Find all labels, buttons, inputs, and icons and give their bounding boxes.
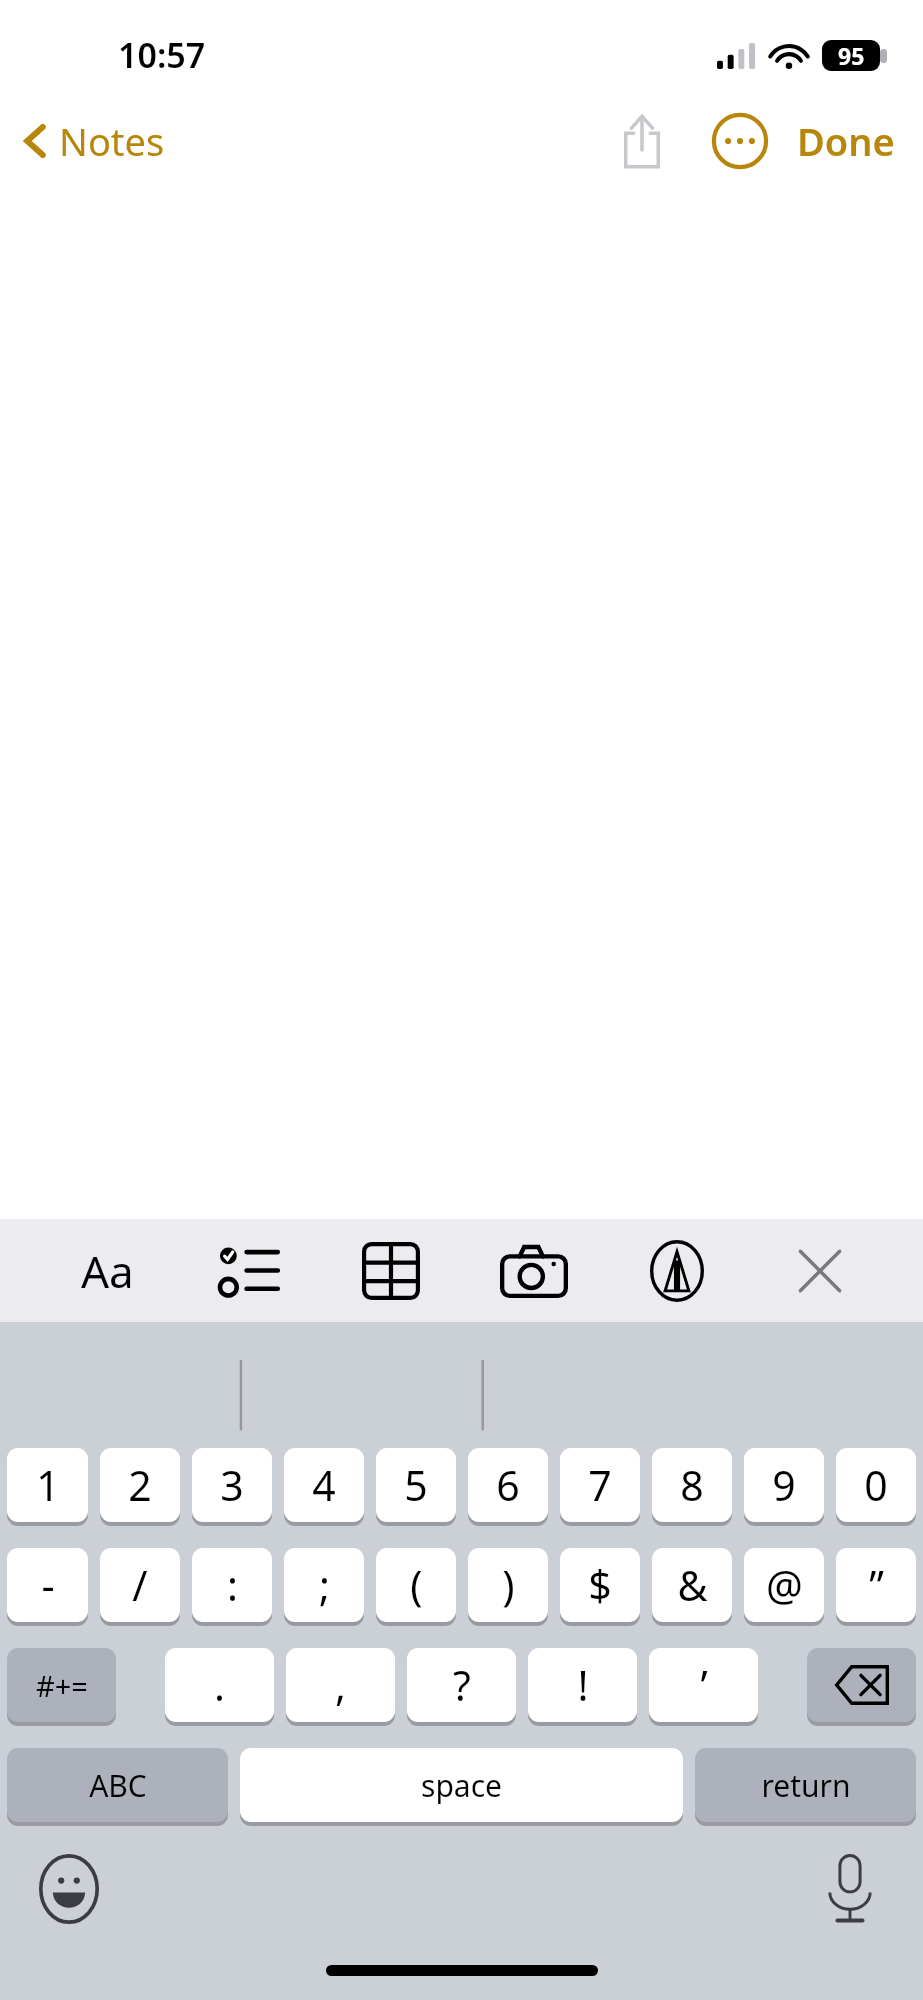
button[interactable]: ( (376, 1548, 456, 1626)
button[interactable]: Table (320, 1219, 462, 1322)
staticText: @ (766, 1557, 803, 1613)
button[interactable]: ! (528, 1648, 637, 1726)
staticText: space (421, 1765, 502, 1806)
staticText: - (41, 1557, 55, 1613)
button[interactable]: Emoji (30, 1850, 108, 1928)
button[interactable]: 0 (836, 1448, 916, 1526)
button[interactable]: Checklist (178, 1219, 320, 1322)
button[interactable]: Dictate (811, 1850, 889, 1928)
staticText: ABC (89, 1765, 147, 1806)
button[interactable]: - (7, 1548, 88, 1626)
staticText: ) (502, 1557, 515, 1613)
button[interactable]: Delete (807, 1648, 916, 1726)
staticText: ; (319, 1557, 330, 1613)
staticText: return (761, 1765, 851, 1806)
button[interactable]: Share (605, 104, 679, 178)
staticText: 7 (588, 1457, 612, 1513)
button[interactable]: ABC (7, 1748, 228, 1826)
staticText: ” (869, 1557, 884, 1613)
staticText: 95 (838, 40, 865, 71)
staticText: 8 (680, 1457, 704, 1513)
button[interactable]: ; (284, 1548, 364, 1626)
staticText: ! (577, 1657, 589, 1713)
button[interactable]: ’ (649, 1648, 758, 1726)
staticText: . (214, 1657, 225, 1713)
button[interactable]: 2 (100, 1448, 180, 1526)
staticText: 3 (220, 1457, 244, 1513)
staticText: Done (797, 115, 895, 167)
button[interactable]: Hide keyboard (748, 1219, 891, 1322)
button[interactable]: Camera (462, 1219, 605, 1322)
button[interactable]: Done (789, 105, 903, 177)
button[interactable]: , (286, 1648, 395, 1726)
staticText: Aa (81, 1241, 134, 1301)
staticText: 4 (312, 1457, 336, 1513)
staticText: 1 (36, 1457, 60, 1513)
staticText: 10:57 (118, 32, 206, 78)
button[interactable]: $ (560, 1548, 640, 1626)
staticText: / (132, 1557, 148, 1613)
staticText: 5 (404, 1457, 428, 1513)
button[interactable]: Notes (14, 107, 173, 175)
button[interactable]: ” (836, 1548, 916, 1626)
staticText: ? (453, 1657, 471, 1713)
staticText: 0 (864, 1457, 888, 1513)
button[interactable]: ) (468, 1548, 548, 1626)
button[interactable]: @ (744, 1548, 824, 1626)
staticText: & (677, 1557, 708, 1613)
button[interactable]: #+= (7, 1648, 116, 1726)
button[interactable]: space (240, 1748, 683, 1826)
button[interactable]: 4 (284, 1448, 364, 1526)
staticText: , (335, 1657, 346, 1713)
button[interactable]: return (695, 1748, 916, 1826)
button[interactable]: 9 (744, 1448, 824, 1526)
button[interactable]: Format (36, 1219, 178, 1322)
staticText: ( (410, 1557, 423, 1613)
staticText: ’ (700, 1657, 708, 1713)
button[interactable]: Markup (605, 1219, 748, 1322)
button[interactable]: 1 (7, 1448, 88, 1526)
button[interactable]: 7 (560, 1448, 640, 1526)
staticText: 9 (772, 1457, 796, 1513)
button[interactable]: 3 (192, 1448, 272, 1526)
button[interactable]: & (652, 1548, 732, 1626)
button[interactable]: ? (407, 1648, 516, 1726)
button[interactable]: . (165, 1648, 274, 1726)
button[interactable]: 8 (652, 1448, 732, 1526)
button[interactable]: 5 (376, 1448, 456, 1526)
staticText: 6 (496, 1457, 520, 1513)
staticText: 2 (128, 1457, 152, 1513)
staticText: Notes (59, 115, 165, 167)
button[interactable]: : (192, 1548, 272, 1626)
staticText: $ (588, 1557, 612, 1613)
button[interactable]: 6 (468, 1448, 548, 1526)
staticText: #+= (36, 1666, 88, 1705)
staticText: : (227, 1557, 238, 1613)
button[interactable]: More (703, 104, 777, 178)
button[interactable]: / (100, 1548, 180, 1626)
